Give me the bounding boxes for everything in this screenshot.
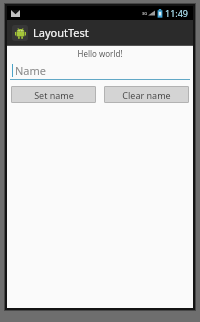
staticText: LayoutTest [33,25,89,40]
staticText: 11:49 [165,7,189,19]
button[interactable]: Set name [11,86,96,103]
staticText: 3G [142,11,148,16]
staticText: Hello world! [7,48,193,59]
staticText: Set name [34,89,74,101]
staticText: Name [15,63,47,78]
button[interactable]: Clear name [104,86,189,103]
staticText: Clear name [122,89,171,101]
button[interactable]: LayoutTest [7,20,193,45]
button[interactable]: Name [10,62,190,80]
other: New message [11,10,20,17]
